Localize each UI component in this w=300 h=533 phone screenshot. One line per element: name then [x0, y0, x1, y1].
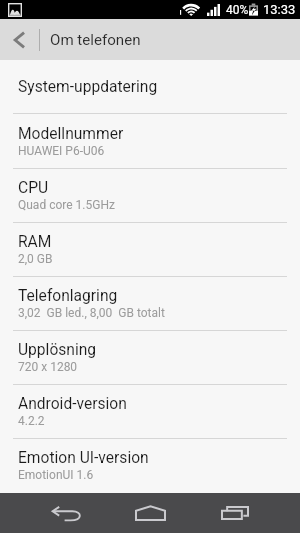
staticText: 4.2.2: [18, 414, 45, 428]
staticText: Om telefonen: [50, 31, 141, 49]
button[interactable]: CPU: [0, 169, 300, 222]
button[interactable]: Back: [24, 493, 109, 533]
button[interactable]: Recent apps: [192, 493, 277, 533]
button[interactable]: Back: [0, 19, 39, 60]
staticText: 2,0 GB: [18, 252, 53, 266]
staticText: 13:33: [263, 2, 296, 17]
staticText: HUAWEI P6-U06: [18, 144, 105, 158]
staticText: CPU: [18, 179, 49, 197]
staticText: 720 x 1280: [18, 360, 78, 374]
button[interactable]: Android-version: [0, 385, 300, 438]
staticText: Emotion UI-version: [18, 449, 149, 467]
staticText: 40%: [226, 3, 249, 17]
staticText: Telefonlagring: [18, 287, 118, 305]
staticText: EmotionUI 1.6: [18, 468, 94, 482]
staticText: Android-version: [18, 395, 127, 413]
staticText: 3,02 GB led., 8,00 GB totalt: [18, 306, 165, 320]
button[interactable]: System-uppdatering: [0, 60, 300, 113]
staticText: RAM: [18, 233, 52, 251]
button[interactable]: Emotion UI-version: [0, 439, 300, 492]
button[interactable]: Upplösning: [0, 331, 300, 384]
button[interactable]: Telefonlagring: [0, 277, 300, 330]
staticText: System-uppdatering: [18, 78, 158, 96]
staticText: Quad core 1.5GHz: [18, 198, 115, 212]
staticText: Upplösning: [18, 341, 97, 359]
button[interactable]: Modellnummer: [0, 114, 300, 168]
button[interactable]: Home: [108, 493, 193, 533]
staticText: Modellnummer: [18, 125, 124, 143]
button[interactable]: RAM: [0, 223, 300, 276]
